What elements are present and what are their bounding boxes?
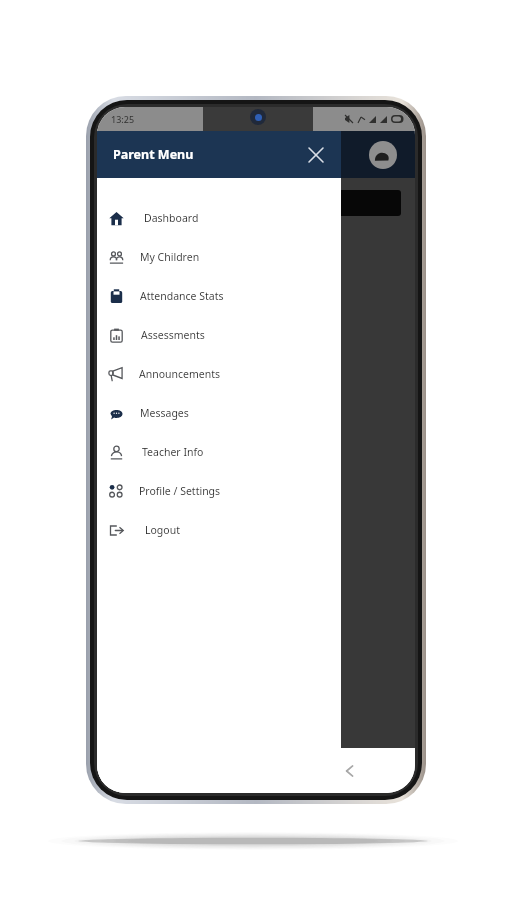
staticText: 92% bbox=[111, 402, 127, 413]
button[interactable]: Attendance Stats bbox=[97, 276, 341, 315]
button[interactable]: Back bbox=[337, 758, 363, 784]
button[interactable]: Profile avatar bbox=[369, 141, 397, 169]
button[interactable]: Teacher Info bbox=[97, 432, 341, 471]
button[interactable]: Messages bbox=[97, 393, 341, 432]
staticText: 92% bbox=[111, 285, 127, 296]
staticText: 13:25 bbox=[111, 113, 135, 125]
button[interactable]: Assessments bbox=[97, 315, 341, 354]
staticText: 92% bbox=[111, 324, 127, 335]
staticText: Announcements bbox=[139, 367, 221, 381]
button[interactable]: Profile / Settings bbox=[97, 471, 341, 510]
staticText: My Children bbox=[140, 250, 200, 264]
button[interactable]: My Children bbox=[97, 237, 341, 276]
staticText: Assessments bbox=[141, 328, 205, 342]
staticText: Logout bbox=[145, 523, 180, 537]
button[interactable]: Dashboard bbox=[97, 198, 341, 237]
button[interactable]: Announcements bbox=[97, 354, 341, 393]
staticText: Dashboard bbox=[144, 211, 199, 225]
button[interactable]: Close menu bbox=[301, 140, 331, 170]
button[interactable]: Logout bbox=[97, 510, 341, 549]
staticText: 92% bbox=[111, 363, 127, 374]
staticText: Profile / Settings bbox=[139, 484, 221, 498]
staticText: Attendance Stats bbox=[140, 289, 224, 303]
staticText: 92% bbox=[111, 441, 127, 452]
staticText: Parent Menu bbox=[113, 146, 194, 163]
staticText: Messages bbox=[140, 406, 189, 420]
staticText: 92% bbox=[111, 246, 127, 257]
staticText: Teacher Info bbox=[142, 445, 204, 459]
